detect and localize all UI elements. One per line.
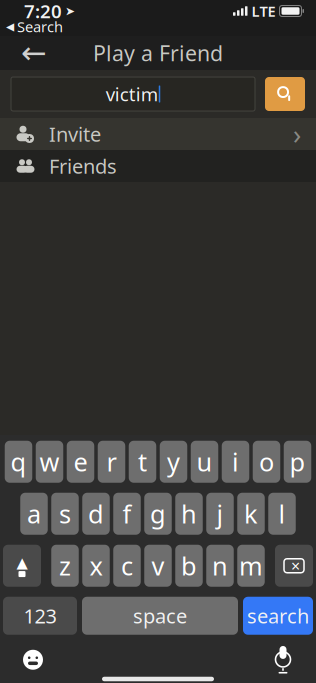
button[interactable]: j [206, 493, 234, 535]
staticText: g [150, 497, 166, 530]
staticText: b [181, 549, 197, 582]
staticText: e [73, 445, 87, 478]
button[interactable]: Emoji keyboard [13, 643, 53, 677]
staticText: o [259, 445, 274, 478]
staticText: › [293, 116, 301, 152]
button[interactable]: l [268, 493, 296, 535]
staticText: v [151, 549, 164, 582]
button[interactable]: n [206, 545, 234, 587]
staticText: Search [17, 17, 63, 36]
button[interactable]: r [98, 441, 125, 483]
staticText: f [122, 497, 131, 530]
button[interactable]: q [5, 441, 32, 483]
staticText: z [59, 549, 71, 582]
staticText: m [239, 549, 263, 582]
staticText: c [121, 549, 133, 582]
staticText: i [232, 445, 239, 478]
button[interactable]: c [113, 545, 141, 587]
staticText: n [212, 549, 228, 582]
button[interactable]: x [82, 545, 110, 587]
staticText: space [133, 602, 187, 629]
staticText: ▲ [16, 554, 27, 571]
button[interactable]: t [129, 441, 156, 483]
staticText: Play a Friend [93, 39, 223, 67]
button[interactable]: e [67, 441, 94, 483]
button[interactable]: search [243, 597, 313, 635]
button[interactable]: space [82, 597, 238, 635]
button[interactable]: y [160, 441, 187, 483]
button[interactable]: h [175, 493, 203, 535]
button[interactable]: b [175, 545, 203, 587]
button[interactable]: d [82, 493, 110, 535]
staticText: l [278, 497, 285, 530]
staticText: t [138, 445, 147, 478]
staticText: x [89, 549, 102, 582]
button[interactable]: s [51, 493, 79, 535]
button[interactable]: Invite [0, 118, 316, 150]
button[interactable]: p [284, 441, 311, 483]
staticText: Invite [49, 121, 101, 147]
button[interactable]: Friends [0, 150, 316, 182]
staticText: r [106, 445, 116, 478]
staticText: k [244, 497, 258, 530]
staticText: s [59, 497, 71, 530]
button[interactable]: 123 [3, 597, 77, 635]
button[interactable]: Search [265, 77, 305, 111]
button[interactable]: f [113, 493, 141, 535]
staticText: LTE [251, 1, 275, 21]
button[interactable]: z [51, 545, 79, 587]
staticText: search [247, 602, 309, 629]
staticText: j [216, 497, 223, 530]
staticText: victim [106, 82, 158, 106]
staticText: d [88, 497, 104, 530]
staticText: a [27, 497, 41, 530]
button[interactable]: Delete [275, 545, 313, 587]
staticText: p [289, 445, 305, 478]
staticText: h [181, 497, 197, 530]
button[interactable]: Shift [3, 545, 41, 587]
staticText: × [291, 555, 300, 576]
button[interactable]: w [36, 441, 63, 483]
staticText: y [167, 445, 180, 478]
staticText: q [10, 445, 26, 478]
staticText: 123 [23, 602, 56, 629]
button[interactable]: i [222, 441, 249, 483]
button[interactable]: u [191, 441, 218, 483]
button[interactable]: v [144, 545, 172, 587]
staticText: ➤ [65, 4, 75, 18]
staticText: ← [21, 36, 47, 70]
button[interactable]: g [144, 493, 172, 535]
staticText: u [196, 445, 212, 478]
button[interactable]: Dictation [263, 643, 303, 677]
staticText: 7:20 [24, 0, 62, 23]
staticText: w [39, 445, 59, 478]
button[interactable]: m [237, 545, 265, 587]
button[interactable]: Back [10, 36, 58, 70]
button[interactable]: k [237, 493, 265, 535]
staticText: Friends [49, 153, 117, 179]
staticText: ◀ [6, 20, 14, 32]
button[interactable]: a [20, 493, 48, 535]
button[interactable]: o [253, 441, 280, 483]
